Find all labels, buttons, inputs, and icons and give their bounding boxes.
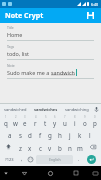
staticText: l <box>89 131 91 139</box>
staticText: z <box>19 144 22 152</box>
button[interactable]: 6 <box>50 114 60 127</box>
button[interactable]: 1 <box>1 114 10 127</box>
button[interactable]: Shift <box>1 140 15 153</box>
button[interactable]: Save note <box>85 10 96 21</box>
button[interactable]: Note <box>3 63 98 79</box>
staticText: a <box>8 131 12 139</box>
staticText: h <box>58 131 62 139</box>
staticText: s <box>19 131 22 139</box>
button[interactable]: m <box>75 140 85 153</box>
button[interactable]: ?123 <box>1 153 17 166</box>
staticText: v <box>48 144 52 152</box>
button[interactable]: f <box>35 127 45 140</box>
button[interactable]: sandwiched <box>0 104 30 114</box>
staticText: 5 <box>45 115 47 119</box>
staticText: 7 <box>64 115 66 119</box>
staticText: 0 <box>94 115 96 119</box>
staticText: Home <box>7 31 23 38</box>
button[interactable]: g <box>45 127 55 140</box>
button[interactable]: English <box>36 155 73 164</box>
staticText: d <box>28 131 32 139</box>
button[interactable]: sandwiching <box>61 104 92 114</box>
staticText: sandwiches <box>34 107 58 112</box>
staticText: b <box>58 144 62 152</box>
button[interactable]: 2 <box>10 114 20 127</box>
staticText: Note Crypt <box>5 11 44 21</box>
staticText: o <box>83 119 87 127</box>
button[interactable]: v <box>45 140 55 153</box>
button[interactable]: j <box>65 127 75 140</box>
staticText: m <box>77 144 83 152</box>
button[interactable]: Voice input <box>92 104 101 114</box>
staticText: Note <box>7 63 15 68</box>
staticText: w <box>13 119 18 127</box>
staticText: p <box>93 119 97 127</box>
staticText: n <box>68 144 72 152</box>
button[interactable]: 4 <box>30 114 40 127</box>
staticText: 2 <box>15 115 17 119</box>
button[interactable]: Recent apps <box>63 166 89 180</box>
staticText: 9 <box>84 115 86 119</box>
button[interactable]: l <box>85 127 95 140</box>
button[interactable]: z <box>15 140 25 153</box>
button[interactable]: k <box>75 127 85 140</box>
staticText: x <box>28 144 32 152</box>
staticText: t <box>44 119 47 127</box>
button[interactable]: 9 <box>80 114 90 127</box>
staticText: sandwich <box>51 69 75 76</box>
button[interactable]: 8 <box>70 114 80 127</box>
button[interactable]: x <box>25 140 35 153</box>
staticText: 4 <box>35 115 37 119</box>
button[interactable]: Home <box>37 166 63 180</box>
button[interactable]: Backspace <box>85 140 100 153</box>
staticText: sandwiching <box>65 107 89 112</box>
button[interactable]: , <box>17 153 26 166</box>
button[interactable]: Tags <box>3 44 98 60</box>
button[interactable]: 5 <box>40 114 50 127</box>
staticText: . <box>78 156 80 163</box>
staticText: j <box>69 131 71 139</box>
button[interactable]: a <box>5 127 15 140</box>
button[interactable]: Emoji <box>26 153 35 166</box>
staticText: Tags <box>7 44 15 49</box>
button[interactable]: 3 <box>20 114 30 127</box>
staticText: Sudo make me a <box>7 69 51 76</box>
button[interactable]: Enter <box>83 153 100 166</box>
staticText: 8 <box>74 115 76 119</box>
button[interactable]: s <box>15 127 25 140</box>
button[interactable]: Switch keyboard <box>89 166 101 180</box>
button[interactable]: n <box>65 140 75 153</box>
button[interactable]: Title <box>3 25 98 41</box>
button[interactable]: sandwiches <box>30 104 61 114</box>
staticText: k <box>78 131 82 139</box>
staticText: u <box>63 119 67 127</box>
staticText: r <box>34 119 37 127</box>
staticText: c <box>39 144 42 152</box>
staticText: g <box>48 131 52 139</box>
staticText: sandwiched <box>4 107 27 112</box>
staticText: 6 <box>54 115 56 119</box>
staticText: e <box>23 119 27 127</box>
button[interactable]: h <box>55 127 65 140</box>
staticText: i <box>74 119 76 127</box>
staticText: 3 <box>24 115 26 119</box>
button[interactable]: Back <box>11 166 37 180</box>
staticText: 6:40 <box>91 2 99 7</box>
button[interactable]: . <box>74 153 83 166</box>
staticText: , <box>21 156 23 163</box>
staticText: ?123 <box>5 157 14 162</box>
button[interactable]: b <box>55 140 65 153</box>
staticText: 1 <box>5 115 7 119</box>
button[interactable]: Hide keyboard <box>0 166 11 180</box>
button[interactable]: c <box>35 140 45 153</box>
staticText: Title <box>7 25 14 30</box>
staticText: f <box>39 131 42 139</box>
button[interactable]: 0 <box>90 114 100 127</box>
staticText: q <box>4 119 8 127</box>
button[interactable]: 7 <box>60 114 70 127</box>
button[interactable]: d <box>25 127 35 140</box>
staticText: English <box>49 157 61 162</box>
staticText: todo, list <box>7 50 29 57</box>
staticText: y <box>53 119 57 127</box>
